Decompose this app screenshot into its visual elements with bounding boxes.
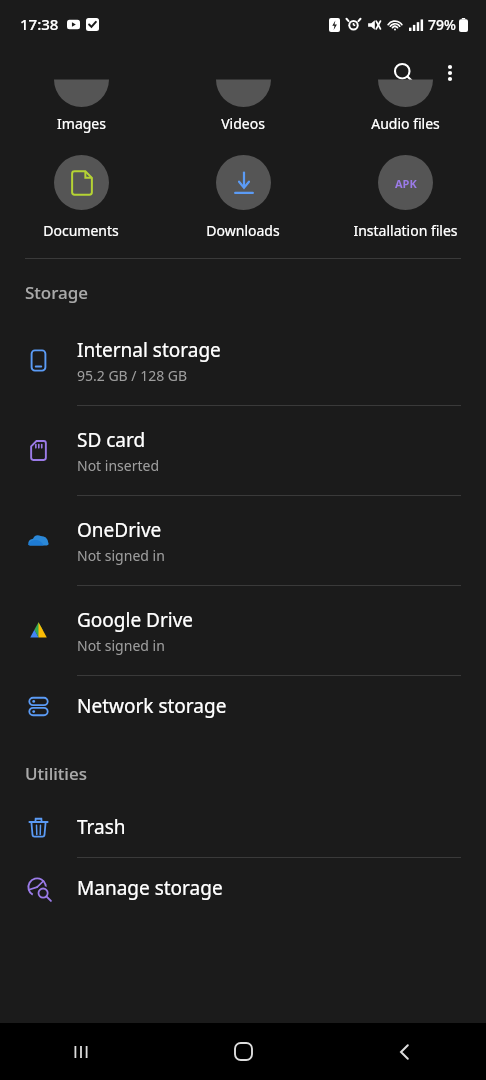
staticText: Trash xyxy=(77,814,126,840)
staticText: Not signed in xyxy=(77,636,165,655)
button[interactable]: OneDrive xyxy=(0,496,486,585)
staticText: SD card xyxy=(77,427,146,453)
staticText: Google Drive xyxy=(77,607,194,633)
button[interactable]: Recents xyxy=(0,1023,162,1080)
staticText: OneDrive xyxy=(77,517,162,543)
staticText: Installation files xyxy=(353,221,458,240)
staticText: Videos xyxy=(221,114,265,133)
staticText: Documents xyxy=(43,221,119,240)
staticText: Storage xyxy=(25,281,89,304)
button[interactable]: Internal storage xyxy=(0,316,486,405)
button[interactable]: Back xyxy=(324,1023,486,1080)
button[interactable]: Network storage xyxy=(0,676,486,736)
button[interactable]: More options xyxy=(428,51,472,95)
staticText: Audio files xyxy=(371,114,440,133)
staticText: Downloads xyxy=(206,221,280,240)
button[interactable]: Trash xyxy=(0,797,486,857)
button[interactable]: Manage storage xyxy=(0,858,486,918)
staticText: Not signed in xyxy=(77,546,165,565)
button[interactable]: Images xyxy=(0,98,162,133)
staticText: 79% xyxy=(428,15,456,34)
button[interactable]: SD card xyxy=(0,406,486,495)
staticText: Network storage xyxy=(77,693,227,719)
button[interactable]: Documents xyxy=(0,155,162,240)
button[interactable]: APK xyxy=(324,155,486,240)
button[interactable]: Search xyxy=(380,49,428,97)
button[interactable]: Google Drive xyxy=(0,586,486,675)
staticText: 17:38 xyxy=(20,14,59,34)
staticText: 95.2 GB / 128 GB xyxy=(77,366,188,385)
staticText: Internal storage xyxy=(77,337,221,363)
button[interactable]: Videos xyxy=(162,98,324,133)
button[interactable]: Home xyxy=(162,1023,324,1080)
staticText: Not inserted xyxy=(77,456,160,475)
staticText: Images xyxy=(57,114,106,133)
button[interactable]: Audio files xyxy=(324,98,486,133)
staticText: Manage storage xyxy=(77,875,223,901)
button[interactable]: Downloads xyxy=(162,155,324,240)
staticText: APK xyxy=(395,176,417,191)
staticText: Utilities xyxy=(25,762,87,785)
